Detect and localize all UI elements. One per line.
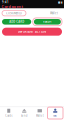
button[interactable]: IMPORTANT ACTION: [2, 28, 62, 36]
staticText: Cards: [5, 114, 12, 117]
staticText: Wallet: [50, 11, 58, 15]
button[interactable]: ADD CARD: [2, 19, 31, 25]
staticText: Send: [21, 114, 28, 117]
staticText: Wallet: [36, 114, 44, 117]
staticText: 9:41: [2, 0, 9, 4]
button[interactable]: VERIFY: [33, 18, 62, 26]
button[interactable]: Me: [47, 107, 63, 119]
button[interactable]: CUSTOMERID: [2, 10, 26, 16]
staticText: ▮▮ ▮: [58, 1, 62, 4]
staticText: ADD CARD: [9, 20, 24, 23]
staticText: CUSTOMERID: [6, 11, 22, 15]
button[interactable]: Wallet: [32, 107, 47, 119]
button[interactable]: Send: [16, 107, 32, 119]
staticText: IMPORTANT ACTION: [18, 30, 46, 33]
staticText: Cardagent: [1, 4, 23, 9]
staticText: VERIFY: [43, 20, 52, 23]
button[interactable]: Cards: [1, 107, 16, 119]
staticText: Me: [53, 114, 57, 117]
